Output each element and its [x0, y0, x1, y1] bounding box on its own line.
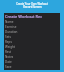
- button[interactable]: Sets: [4, 34, 60, 39]
- button[interactable]: Duration: [4, 29, 60, 34]
- button[interactable]: Name: [4, 19, 60, 24]
- button[interactable]: Rest: [4, 49, 60, 54]
- button[interactable]: Exercise: [4, 24, 60, 29]
- staticText: Weight: [5, 45, 15, 49]
- staticText: Notes: [5, 55, 14, 59]
- button[interactable]: Create Workout Rec: [4, 14, 60, 19]
- button[interactable]: Weight: [4, 44, 60, 49]
- button[interactable]: Date: [4, 59, 60, 64]
- staticText: Date: [5, 60, 12, 64]
- staticText: Create Your Own Workout: [16, 2, 48, 6]
- staticText: Create Workout Rec: [5, 14, 43, 19]
- staticText: Rest: [5, 50, 12, 54]
- staticText: Sets: [5, 35, 11, 39]
- button[interactable]: Save: [4, 64, 60, 69]
- staticText: Name: [5, 20, 14, 24]
- button[interactable]: Reps: [4, 39, 60, 44]
- staticText: Record Screen: [23, 5, 42, 9]
- staticText: Exercise: [5, 25, 17, 29]
- staticText: Reps: [5, 40, 12, 44]
- staticText: Save: [5, 65, 12, 69]
- staticText: Duration: [5, 30, 18, 34]
- button[interactable]: Notes: [4, 54, 60, 59]
